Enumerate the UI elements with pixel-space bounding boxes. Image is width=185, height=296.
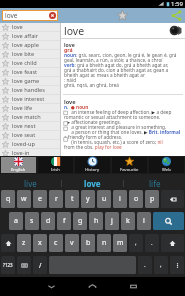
staticText: love-in [12, 149, 30, 157]
staticText: e [38, 194, 42, 204]
button[interactable]: e [33, 190, 47, 208]
button[interactable]: v [65, 234, 79, 252]
button[interactable]: Clear [49, 12, 56, 19]
button[interactable]: love child [0, 59, 60, 67]
button[interactable]: t [65, 190, 79, 208]
button[interactable]: love nest [0, 122, 60, 130]
staticText: b [86, 238, 91, 248]
button[interactable]: i [113, 190, 127, 208]
staticText: love [12, 23, 23, 31]
button[interactable]: g [73, 212, 87, 230]
staticText: z [22, 238, 26, 248]
staticText: u [102, 194, 107, 204]
button[interactable]: Language [17, 256, 31, 274]
button[interactable]: Irish [38, 157, 73, 173]
button[interactable]: c [49, 234, 63, 252]
button[interactable]: History [75, 157, 110, 173]
button[interactable]: English [1, 157, 36, 173]
staticText: x [38, 238, 42, 248]
button[interactable]: More options [170, 256, 184, 274]
button[interactable]: love affair [0, 32, 60, 40]
button[interactable]: p [145, 190, 159, 208]
staticText: m [117, 238, 124, 248]
button[interactable]: d [41, 212, 55, 230]
button[interactable]: q [1, 190, 15, 208]
button[interactable]: Back [31, 277, 72, 296]
staticText: / [39, 261, 42, 270]
button[interactable]: love [62, 177, 123, 189]
button[interactable]: ?123 [1, 256, 15, 274]
button[interactable]: love game [0, 77, 60, 85]
button[interactable]: f [57, 212, 71, 230]
staticText: love bite [12, 50, 35, 58]
button[interactable]: Pronounce [169, 24, 182, 37]
staticText: p [150, 194, 155, 204]
button[interactable]: , [129, 234, 143, 252]
button[interactable]: m [113, 234, 127, 252]
button[interactable]: Shift [161, 234, 184, 252]
button[interactable]: love seat [0, 131, 60, 139]
button[interactable]: w [17, 190, 31, 208]
button[interactable]: o [129, 190, 143, 208]
button[interactable]: y [81, 190, 95, 208]
button[interactable]: loved-up [0, 140, 60, 148]
button[interactable]: z [17, 234, 31, 252]
button[interactable]: love match [0, 113, 60, 121]
button[interactable]: Shift [1, 234, 15, 252]
button[interactable]: love feast [0, 68, 60, 76]
button[interactable]: love [0, 23, 60, 31]
button[interactable]: love [2, 10, 58, 21]
button[interactable]: / [33, 256, 47, 274]
button[interactable]: Favourite [112, 157, 147, 173]
staticText: life [149, 178, 161, 189]
button[interactable]: life [124, 177, 185, 189]
button[interactable]: r [49, 190, 63, 208]
staticText: s [30, 216, 34, 226]
staticText: v [70, 238, 74, 248]
button[interactable]: h [89, 212, 103, 230]
button[interactable]: . [138, 256, 152, 274]
staticText: love match [12, 113, 41, 121]
button[interactable]: Backspace [161, 190, 184, 208]
button[interactable]: Home [72, 277, 113, 296]
staticText: love child [12, 59, 37, 67]
button[interactable]: love-in [0, 149, 60, 157]
staticText: love [5, 11, 18, 20]
staticText: love n. ● noun an intense feeling of dee… [64, 98, 181, 151]
button[interactable]: live [0, 177, 61, 189]
button[interactable]: Favourite [116, 9, 129, 22]
staticText: y [86, 194, 90, 204]
button[interactable]: Web [149, 157, 184, 173]
staticText: a [14, 216, 18, 226]
button[interactable]: Search [153, 212, 184, 230]
button[interactable]: b [81, 234, 95, 252]
button[interactable]: . [145, 234, 159, 252]
staticText: ?123 [3, 262, 13, 268]
button[interactable]: a [9, 212, 23, 230]
button[interactable]: love apple [0, 41, 60, 49]
staticText: . [144, 261, 146, 269]
button[interactable]: Share [170, 9, 183, 22]
button[interactable]: s [25, 212, 39, 230]
staticText: 1:59 [171, 0, 183, 8]
button[interactable]: u [97, 190, 111, 208]
button[interactable]: l [137, 212, 151, 230]
staticText: live [24, 178, 37, 189]
staticText: n [102, 238, 107, 248]
button[interactable]: love handles [0, 86, 60, 94]
button[interactable]: love interest [0, 95, 60, 103]
button[interactable]: j [105, 212, 119, 230]
button[interactable]: n [97, 234, 111, 252]
staticText: love handles [12, 86, 45, 94]
button[interactable]: k [121, 212, 135, 230]
button[interactable]: Recents [113, 277, 154, 296]
button[interactable]: , [154, 256, 168, 274]
staticText: love nest [12, 122, 36, 130]
button[interactable]: x [33, 234, 47, 252]
button[interactable]: love bite [0, 50, 60, 58]
staticText: w [21, 194, 27, 204]
staticText: h [94, 216, 99, 226]
staticText: d [46, 216, 51, 226]
button[interactable]: love life [0, 104, 60, 112]
